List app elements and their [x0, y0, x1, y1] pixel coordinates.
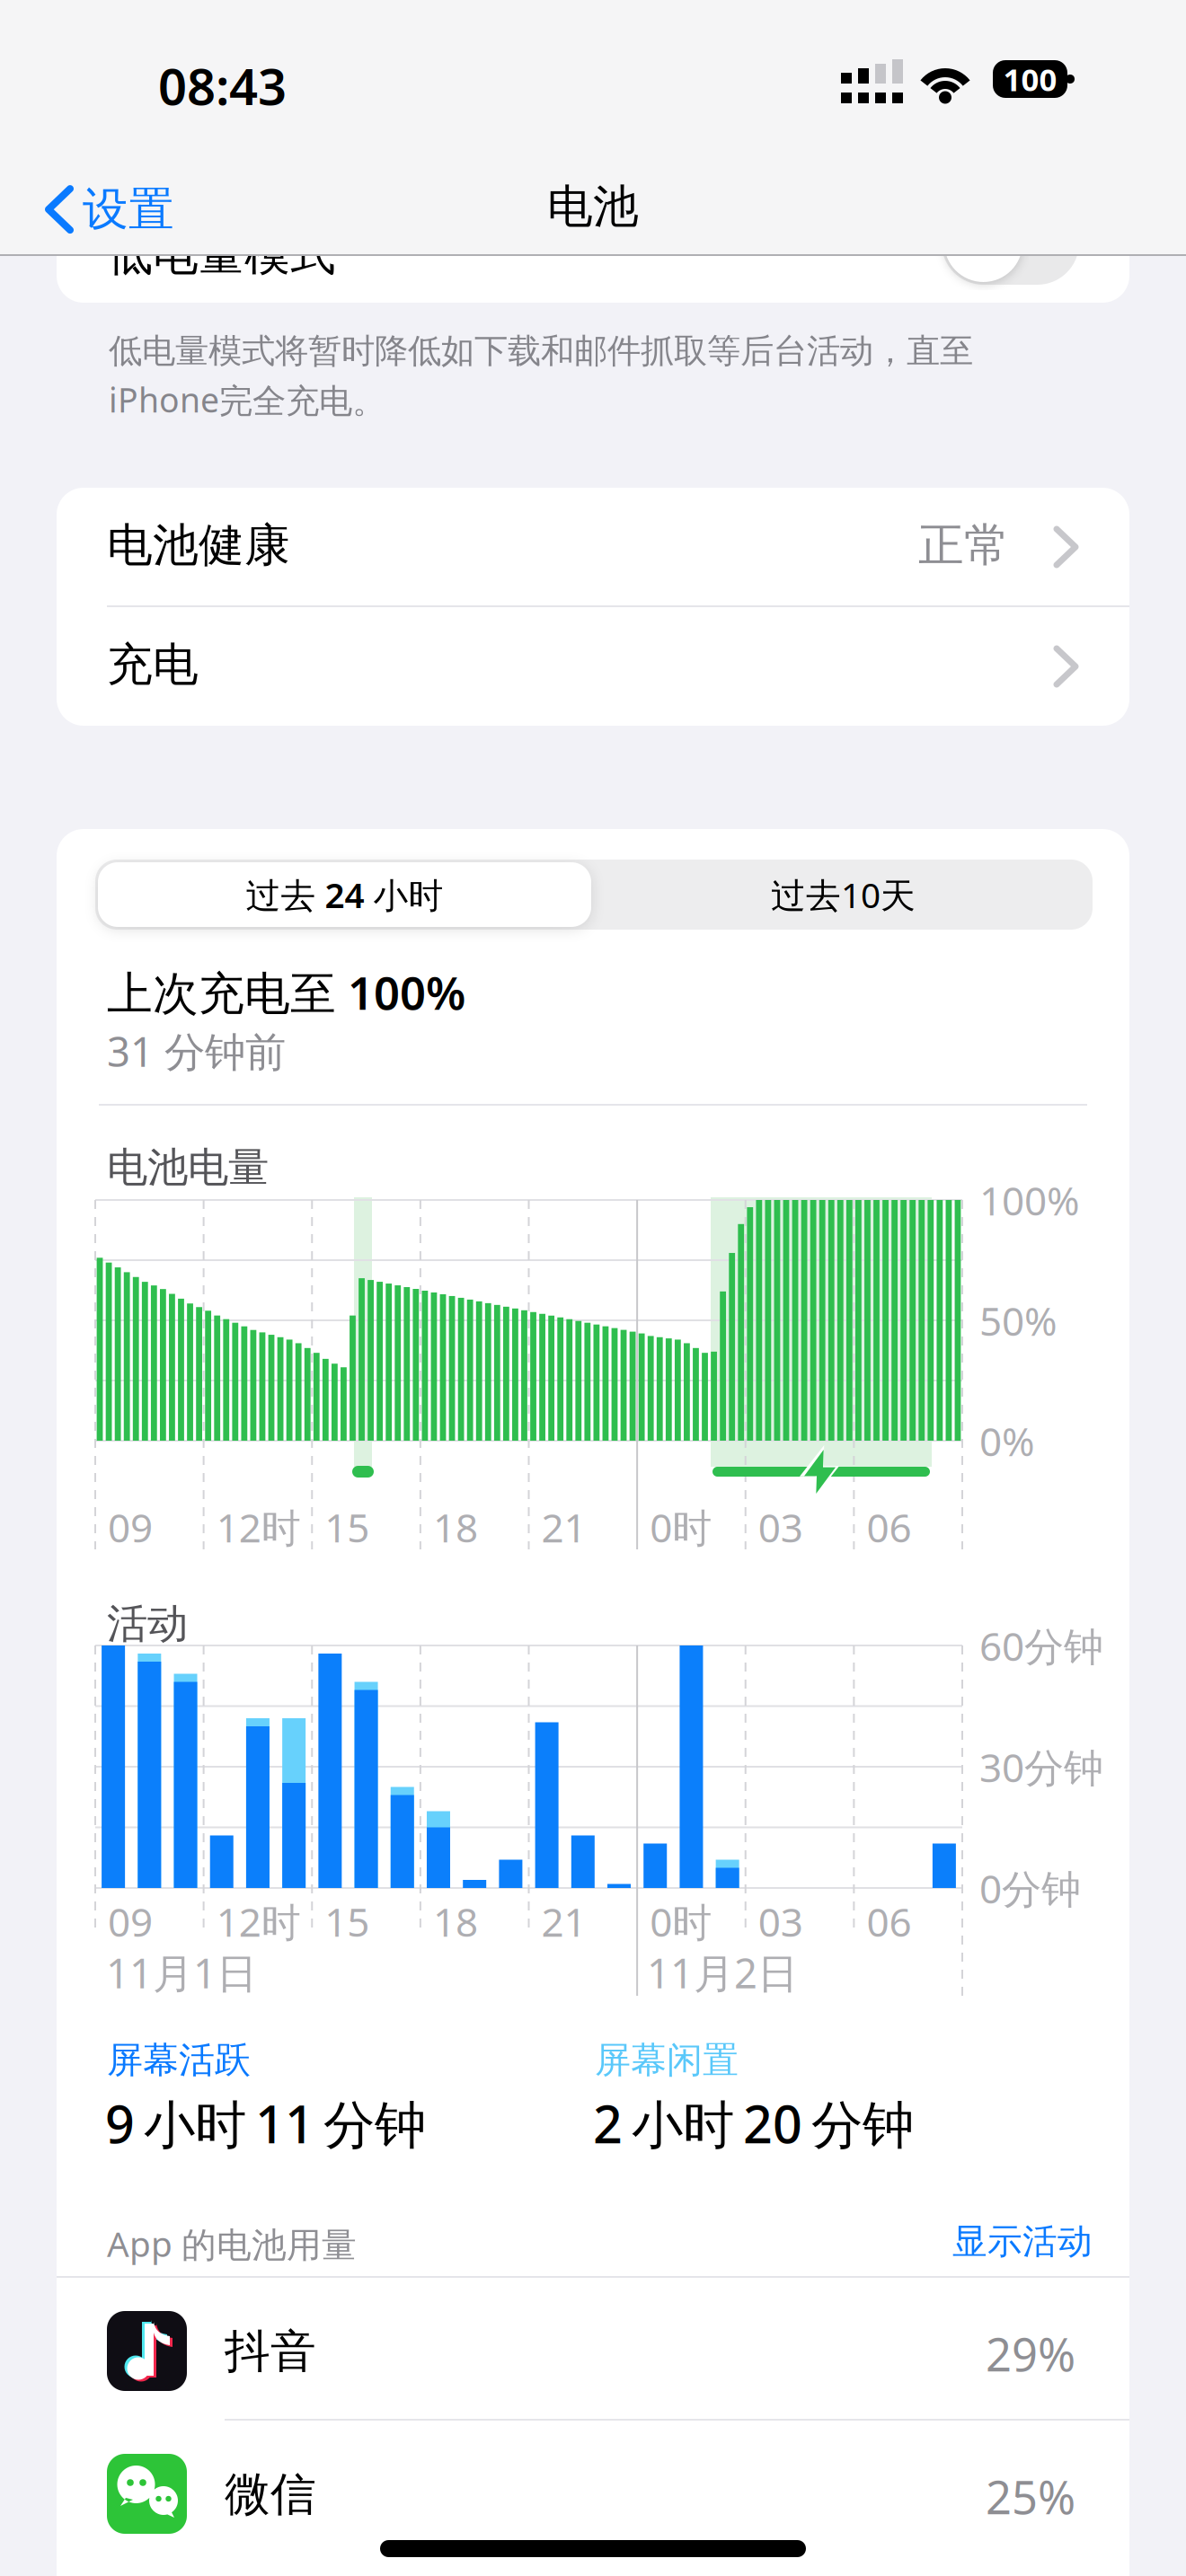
staticText: 100: [1003, 58, 1057, 100]
button[interactable]: 微信: [57, 2422, 1129, 2562]
staticText: 60分钟: [979, 1619, 1103, 1672]
button[interactable]: 过去10天: [597, 862, 1090, 927]
staticText: 25%: [986, 2466, 1075, 2527]
staticText: 9 小时 11 分钟: [105, 2089, 426, 2158]
staticText: 活动: [107, 1599, 188, 1649]
staticText: 21: [541, 1895, 586, 1948]
button[interactable]: 设置: [49, 181, 174, 237]
staticText: 50%: [979, 1294, 1058, 1347]
staticText: 过去 24 小时: [246, 872, 443, 918]
staticText: 0时: [650, 1895, 712, 1948]
staticText: 0时: [650, 1501, 712, 1553]
staticText: iPhone完全充电。: [109, 377, 385, 422]
staticText: 显示活动: [952, 2220, 1093, 2263]
button[interactable]: 显示活动: [952, 2220, 1093, 2263]
staticText: 09: [108, 1895, 153, 1948]
staticText: 抖音: [225, 2324, 316, 2379]
staticText: 21: [541, 1501, 586, 1553]
staticText: 18: [433, 1501, 478, 1553]
staticText: 低电量模式将暂时降低如下载和邮件抓取等后台活动，直至: [109, 331, 973, 372]
staticText: 12时: [216, 1895, 301, 1948]
staticText: App 的电池用量: [107, 2220, 357, 2267]
button[interactable]: 过去 24 小时: [98, 862, 591, 927]
button[interactable]: 电池健康: [57, 488, 1129, 606]
staticText: 06: [866, 1895, 911, 1948]
staticText: 09: [108, 1501, 153, 1553]
staticText: 电池: [547, 179, 639, 235]
staticText: 06: [866, 1501, 911, 1553]
staticText: 电池电量: [107, 1142, 269, 1193]
staticText: 12时: [216, 1501, 301, 1553]
staticText: 31 分钟前: [107, 1024, 286, 1078]
staticText: 上次充电至 100%: [107, 962, 465, 1022]
staticText: 屏幕闲置: [595, 2038, 739, 2082]
staticText: 正常: [918, 517, 1010, 573]
staticText: 11月2日: [647, 1945, 798, 2000]
staticText: 08:43: [158, 52, 287, 119]
staticText: 18: [433, 1895, 478, 1948]
staticText: 03: [758, 1895, 803, 1948]
button[interactable]: 抖音: [57, 2279, 1129, 2419]
staticText: 0分钟: [979, 1862, 1081, 1914]
staticText: 0%: [979, 1415, 1035, 1467]
staticText: 2 小时 20 分钟: [593, 2089, 914, 2158]
staticText: 100%: [979, 1174, 1080, 1226]
staticText: 充电: [107, 637, 199, 693]
button[interactable]: 低电量模式: [57, 183, 1129, 303]
staticText: 15: [325, 1895, 369, 1948]
staticText: 微信: [225, 2466, 316, 2522]
staticText: 低电量模式: [107, 226, 336, 282]
staticText: 屏幕活跃: [107, 2038, 251, 2082]
staticText: 03: [758, 1501, 803, 1553]
staticText: 电池健康: [107, 517, 290, 573]
staticText: 设置: [83, 181, 174, 237]
button[interactable]: 充电: [57, 607, 1129, 726]
staticText: 过去10天: [771, 872, 916, 918]
staticText: 11月1日: [106, 1945, 257, 2000]
staticText: 15: [325, 1501, 369, 1553]
staticText: 30分钟: [979, 1741, 1103, 1793]
staticText: 29%: [986, 2324, 1075, 2384]
